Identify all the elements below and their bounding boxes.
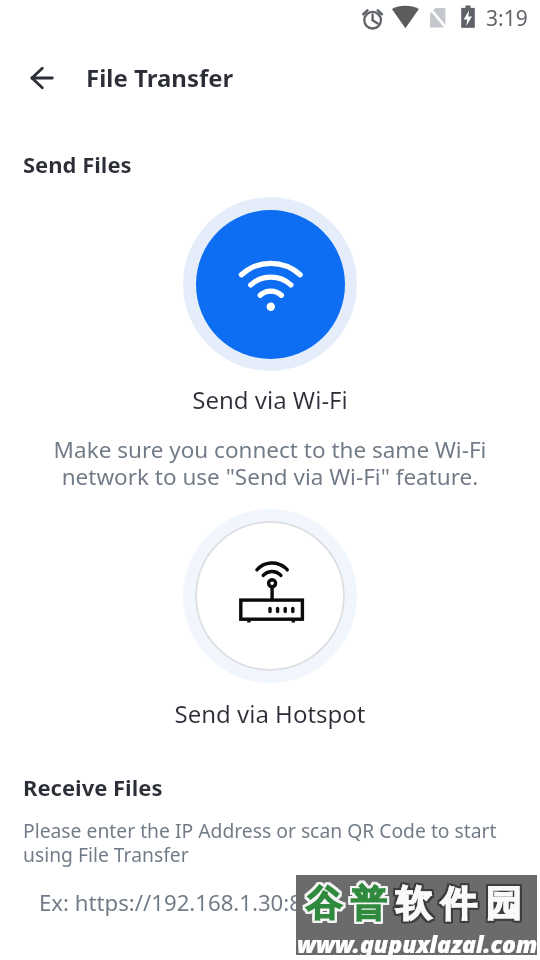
staticText: 谷普 [300, 881, 390, 926]
staticText: 软件园 [392, 881, 527, 926]
staticText: 软件园 [389, 883, 524, 928]
staticText: 软件园 [389, 879, 524, 924]
staticText: Please enter the IP Address or scan QR C… [23, 817, 497, 868]
staticText: 软件园 [389, 882, 524, 927]
staticText: 软件园 [390, 880, 525, 925]
staticText: 软件园 [391, 882, 526, 927]
staticText: 谷普 [301, 883, 391, 928]
staticText: Receive Files [23, 772, 163, 802]
staticText: 软件园 [392, 880, 527, 925]
staticText: 谷普 [301, 881, 391, 926]
staticText: 谷普 [301, 879, 391, 924]
staticText: 软件园 [392, 879, 527, 924]
staticText: 谷普 [303, 882, 393, 927]
staticText: 软件园 [393, 881, 528, 926]
button[interactable]: Send via Hotspot [183, 509, 357, 683]
staticText: 谷普 [303, 879, 393, 924]
staticText: 谷普 [301, 882, 391, 927]
staticText: 软件园 [393, 882, 528, 927]
staticText: 软件园 [390, 881, 525, 926]
staticText: 3:19 [486, 4, 528, 33]
staticText: 谷普 [300, 883, 390, 928]
staticText: 软件园 [391, 880, 526, 925]
staticText: 谷普 [302, 882, 392, 927]
staticText: 软件园 [391, 881, 526, 926]
staticText: Make sure you connect to the same Wi-Fi … [0, 434, 540, 492]
staticText: 谷普 [300, 880, 390, 925]
staticText: 谷普 [299, 879, 389, 924]
staticText: 谷普 [301, 880, 391, 925]
staticText: 谷普 [303, 881, 393, 926]
staticText: 软件园 [393, 883, 528, 928]
staticText: 谷普 [299, 882, 389, 927]
staticText: 谷普 [303, 880, 393, 925]
staticText: 软件园 [390, 882, 525, 927]
staticText: 谷普 [299, 883, 389, 928]
staticText: 软件园 [392, 882, 527, 927]
staticText: 软件园 [389, 881, 524, 926]
staticText: Ex: https://192.168.1.30:8080 [39, 887, 341, 917]
staticText: 谷普 [299, 880, 389, 925]
staticText: File Transfer [86, 61, 234, 94]
staticText: 软件园 [392, 883, 527, 928]
staticText: Send via Wi-Fi [0, 383, 540, 416]
staticText: 谷普 [302, 879, 392, 924]
staticText: 软件园 [390, 879, 525, 924]
staticText: 软件园 [391, 883, 526, 928]
staticText: 谷普 [299, 881, 389, 926]
staticText: 软件园 [393, 880, 528, 925]
staticText: 软件园 [390, 883, 525, 928]
staticText: www.gupuxlazal.com [297, 928, 538, 959]
staticText: 谷普 [303, 883, 393, 928]
staticText: 软件园 [391, 879, 526, 924]
button[interactable]: Send via Wi-Fi [183, 197, 357, 371]
button[interactable]: Back [15, 56, 59, 100]
staticText: 谷普 [300, 882, 390, 927]
staticText: 谷普 [302, 881, 392, 926]
staticText: 谷普 [300, 879, 390, 924]
staticText: Send via Hotspot [0, 697, 540, 730]
staticText: 软件园 [393, 879, 528, 924]
staticText: 谷普 [302, 883, 392, 928]
staticText: 软件园 [389, 880, 524, 925]
staticText: 谷普 [302, 880, 392, 925]
staticText: Send Files [23, 149, 132, 179]
